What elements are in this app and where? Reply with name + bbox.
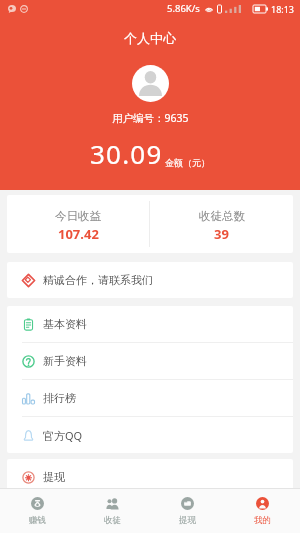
staticText: 个人中心 [124,30,176,46]
staticText: 基本资料 [43,317,87,331]
staticText: 金额（元） [165,157,210,168]
button[interactable]: 今日收益 [7,195,149,253]
button[interactable]: 排行榜 [7,380,293,416]
staticText: 排行榜 [43,391,76,405]
staticText: 赚钱 [29,515,46,526]
staticText: 我的 [254,515,271,526]
staticText: 收徒 [104,515,121,526]
button[interactable]: 新手资料 [7,343,293,379]
button[interactable]: 收徒总数 [150,195,293,253]
staticText: 提现 [43,470,65,484]
button[interactable]: Avatar [132,65,169,102]
button[interactable]: 精诚合作，请联系我们 [7,262,293,298]
button[interactable]: 我的 [225,489,300,533]
staticText: 新手资料 [43,354,87,368]
button[interactable]: 基本资料 [7,306,293,342]
staticText: 用户编号：9635 [112,111,189,125]
staticText: 5.86K/s [167,2,200,15]
button[interactable]: 官方QQ [7,417,293,453]
staticText: 107.42 [58,225,99,243]
staticText: 收徒总数 [199,209,245,223]
staticText: 今日收益 [55,209,101,223]
button[interactable]: 提现 [150,489,225,533]
button[interactable]: 收徒 [75,489,150,533]
button[interactable]: 赚钱 [0,489,75,533]
button[interactable]: 提现 [7,459,293,495]
staticText: 39 [214,225,229,243]
staticText: 18:13 [271,3,295,15]
staticText: 30.09 [90,136,163,171]
staticText: 官方QQ [43,428,83,443]
staticText: 精诚合作，请联系我们 [43,273,153,287]
staticText: 提现 [179,515,196,526]
